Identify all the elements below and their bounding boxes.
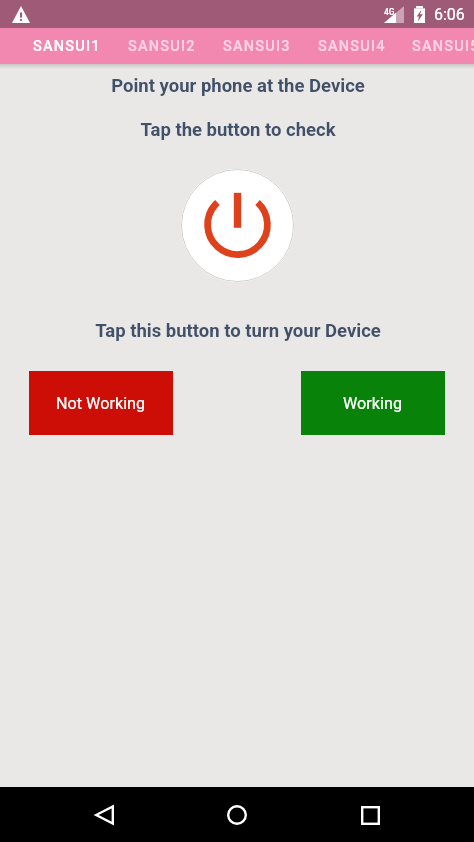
staticText: Working bbox=[343, 394, 403, 413]
staticText: Tap this button to turn your Device bbox=[1, 320, 474, 342]
button[interactable]: SANSUI5 bbox=[399, 28, 474, 64]
button[interactable]: Back bbox=[80, 791, 128, 839]
staticText: 6:06 bbox=[434, 5, 465, 24]
button[interactable]: SANSUI2 bbox=[114, 28, 209, 64]
staticText: SANSUI4 bbox=[318, 38, 386, 55]
staticText: Point your phone at the Device bbox=[1, 75, 474, 97]
button[interactable]: SANSUI4 bbox=[304, 28, 399, 64]
staticText: Tap the button to check bbox=[1, 119, 474, 141]
staticText: SANSUI2 bbox=[128, 38, 196, 55]
button[interactable]: SANSUI1 bbox=[19, 28, 114, 64]
staticText: SANSUI1 bbox=[33, 38, 101, 55]
button[interactable]: Working bbox=[301, 371, 445, 435]
button[interactable]: Not Working bbox=[29, 371, 173, 435]
button[interactable]: Recents bbox=[346, 791, 394, 839]
button[interactable]: Power bbox=[181, 169, 294, 282]
button[interactable]: SANSUI3 bbox=[209, 28, 304, 64]
staticText: 4G bbox=[384, 7, 395, 17]
staticText: SANSUI5 bbox=[412, 38, 474, 55]
staticText: SANSUI3 bbox=[223, 38, 291, 55]
staticText: Not Working bbox=[56, 394, 146, 413]
button[interactable]: Home bbox=[213, 791, 261, 839]
